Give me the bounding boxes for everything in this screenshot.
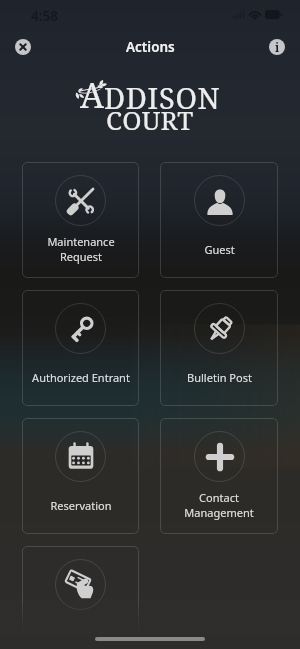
button[interactable]: Close	[15, 39, 31, 55]
staticText: Maintenance Request	[47, 234, 115, 264]
staticText: 4:58	[31, 7, 58, 25]
button[interactable]: Maintenance Request	[22, 162, 139, 278]
button[interactable]: Guest	[160, 162, 278, 278]
button[interactable]: Reservation	[22, 418, 139, 534]
staticText: Contact Management	[184, 490, 254, 520]
staticText: i	[275, 39, 280, 55]
button[interactable]: Info	[269, 39, 285, 55]
button[interactable]: Payment	[22, 546, 139, 649]
staticText: Reservation	[50, 498, 112, 513]
staticText: COURT	[106, 102, 194, 137]
staticText: Bulletin Post	[187, 370, 252, 385]
button[interactable]: Contact Management	[160, 418, 278, 534]
button[interactable]: Authorized Entrant	[22, 290, 139, 406]
staticText: Actions	[126, 38, 175, 56]
staticText: A	[80, 72, 104, 118]
staticText: DDISON	[104, 78, 221, 117]
staticText: Guest	[204, 242, 235, 257]
button[interactable]: Bulletin Post	[160, 290, 278, 406]
staticText: Authorized Entrant	[32, 370, 130, 385]
